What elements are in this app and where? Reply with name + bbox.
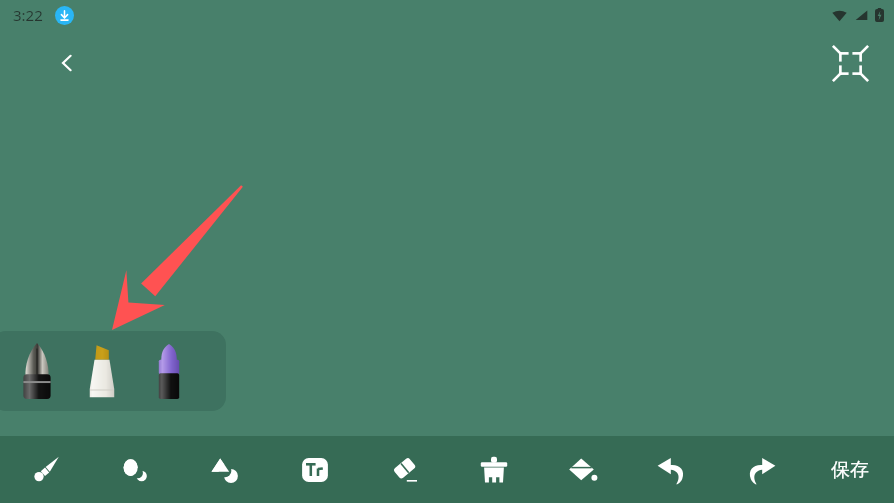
button[interactable]: Fullscreen — [828, 41, 872, 85]
button[interactable]: Erase — [360, 436, 449, 503]
button[interactable]: Shapes — [180, 436, 270, 503]
button[interactable]: Eraser shapes — [90, 436, 180, 503]
button[interactable]: Redo — [716, 436, 805, 503]
button[interactable]: Marker — [136, 338, 202, 404]
button[interactable]: 保存 — [805, 436, 894, 503]
staticText: 保存 — [831, 458, 869, 482]
button[interactable]: Fountain pen — [6, 338, 68, 404]
button[interactable]: Fill — [538, 436, 627, 503]
staticText: 3:22 — [13, 5, 43, 25]
button[interactable]: Undo — [627, 436, 716, 503]
button[interactable]: Highlighter — [68, 338, 136, 404]
button[interactable]: Back — [46, 42, 88, 84]
button[interactable]: Text — [270, 436, 360, 503]
button[interactable]: Brush — [0, 436, 90, 503]
button[interactable]: Clear — [449, 436, 538, 503]
